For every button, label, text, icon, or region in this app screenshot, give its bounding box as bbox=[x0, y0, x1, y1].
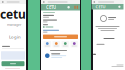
button[interactable]: Tool bbox=[70, 41, 78, 47]
staticText: cetu bbox=[0, 6, 26, 22]
button[interactable] bbox=[1, 61, 24, 66]
button[interactable]: Tool bbox=[52, 41, 60, 47]
staticText: Login bbox=[9, 34, 21, 40]
staticText: manager bbox=[7, 22, 21, 27]
button[interactable]: Tool bbox=[61, 41, 69, 47]
button[interactable]: Tool bbox=[43, 41, 51, 47]
staticText: CETU bbox=[95, 4, 105, 9]
button[interactable] bbox=[43, 34, 78, 39]
staticText: CETU bbox=[46, 4, 56, 10]
